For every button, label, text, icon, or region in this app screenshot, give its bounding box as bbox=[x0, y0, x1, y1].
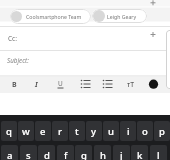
staticText: a bbox=[7, 149, 13, 160]
staticText: r bbox=[58, 125, 63, 138]
button[interactable]: B bbox=[8, 78, 21, 91]
staticText: Leigh Geary bbox=[107, 13, 137, 20]
staticText: d bbox=[44, 149, 50, 160]
button[interactable]: u bbox=[103, 121, 119, 141]
button[interactable]: ᴛT bbox=[124, 78, 137, 91]
staticText: k bbox=[137, 149, 143, 160]
staticText: Coolsmartphone Team bbox=[26, 13, 82, 20]
button[interactable] bbox=[147, 78, 160, 91]
staticText: j bbox=[120, 149, 123, 160]
button[interactable]: o bbox=[137, 121, 153, 141]
button[interactable]: r bbox=[52, 121, 68, 141]
staticText: y bbox=[91, 125, 97, 138]
button[interactable]: p bbox=[154, 121, 170, 141]
staticText: l bbox=[157, 149, 160, 160]
button[interactable]: t bbox=[69, 121, 85, 141]
staticText: B bbox=[12, 80, 17, 90]
staticText: g bbox=[81, 149, 87, 160]
button[interactable]: Subject: bbox=[7, 56, 29, 65]
staticText: U bbox=[58, 79, 63, 88]
staticText: I bbox=[35, 80, 38, 90]
button[interactable]: Leigh Geary bbox=[92, 9, 147, 23]
button[interactable]: e bbox=[35, 121, 51, 141]
button[interactable]: s bbox=[20, 145, 37, 160]
button[interactable]: k bbox=[131, 145, 148, 160]
button[interactable]: f bbox=[57, 145, 74, 160]
staticText: e bbox=[40, 125, 46, 138]
staticText: q bbox=[6, 125, 12, 138]
staticText: u bbox=[108, 125, 114, 138]
button[interactable]: g bbox=[75, 145, 92, 160]
button[interactable]: Coolsmartphone Team bbox=[10, 9, 91, 24]
staticText: i bbox=[127, 125, 130, 138]
staticText: f bbox=[64, 149, 68, 160]
button[interactable]: h bbox=[94, 145, 111, 160]
button[interactable]: U bbox=[54, 77, 67, 90]
staticText: s bbox=[26, 149, 31, 160]
staticText: o bbox=[142, 125, 148, 138]
button[interactable]: y bbox=[86, 121, 102, 141]
staticText: t bbox=[75, 125, 79, 138]
button[interactable]: j bbox=[113, 145, 130, 160]
button[interactable] bbox=[79, 78, 93, 91]
staticText: h bbox=[100, 149, 106, 160]
button[interactable]: w bbox=[18, 121, 34, 141]
button[interactable] bbox=[146, 0, 160, 10]
staticText: ᴛT bbox=[127, 80, 135, 89]
button[interactable] bbox=[101, 78, 115, 91]
button[interactable]: q bbox=[1, 121, 17, 141]
button[interactable]: d bbox=[38, 145, 55, 160]
staticText: p bbox=[159, 125, 165, 138]
button[interactable]: i bbox=[120, 121, 136, 141]
button[interactable]: I bbox=[30, 78, 43, 91]
button[interactable]: a bbox=[1, 145, 18, 160]
button[interactable]: Cc: bbox=[8, 34, 17, 43]
button[interactable] bbox=[146, 28, 160, 41]
button[interactable]: l bbox=[150, 145, 167, 160]
staticText: w bbox=[22, 125, 30, 138]
